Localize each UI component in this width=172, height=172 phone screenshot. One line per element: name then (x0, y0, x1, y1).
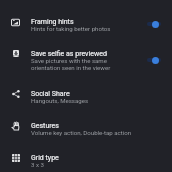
staticText: Save pictures with the same orientation … (31, 57, 111, 72)
button[interactable]: Save selfie as previewed (0, 40, 172, 80)
staticText: Social Share (31, 90, 70, 98)
button[interactable]: Toggle Framing hints (146, 17, 166, 31)
staticText: Hangouts, Messages (31, 97, 89, 104)
button[interactable]: Social Share (0, 80, 172, 112)
button[interactable]: Toggle Save selfie as previewed (146, 53, 166, 67)
button[interactable]: Framing hints (0, 8, 172, 40)
button[interactable]: Grid type (0, 144, 172, 172)
staticText: Framing hints (31, 18, 74, 26)
staticText: Grid type (31, 154, 59, 162)
staticText: Save selfie as previewed (31, 50, 107, 58)
staticText: Volume key action, Double-tap action (31, 129, 132, 136)
staticText: 3 x 3 (31, 161, 44, 168)
staticText: Gestures (31, 122, 59, 130)
button[interactable]: Gestures (0, 112, 172, 144)
staticText: Hints for taking better photos (31, 25, 111, 32)
